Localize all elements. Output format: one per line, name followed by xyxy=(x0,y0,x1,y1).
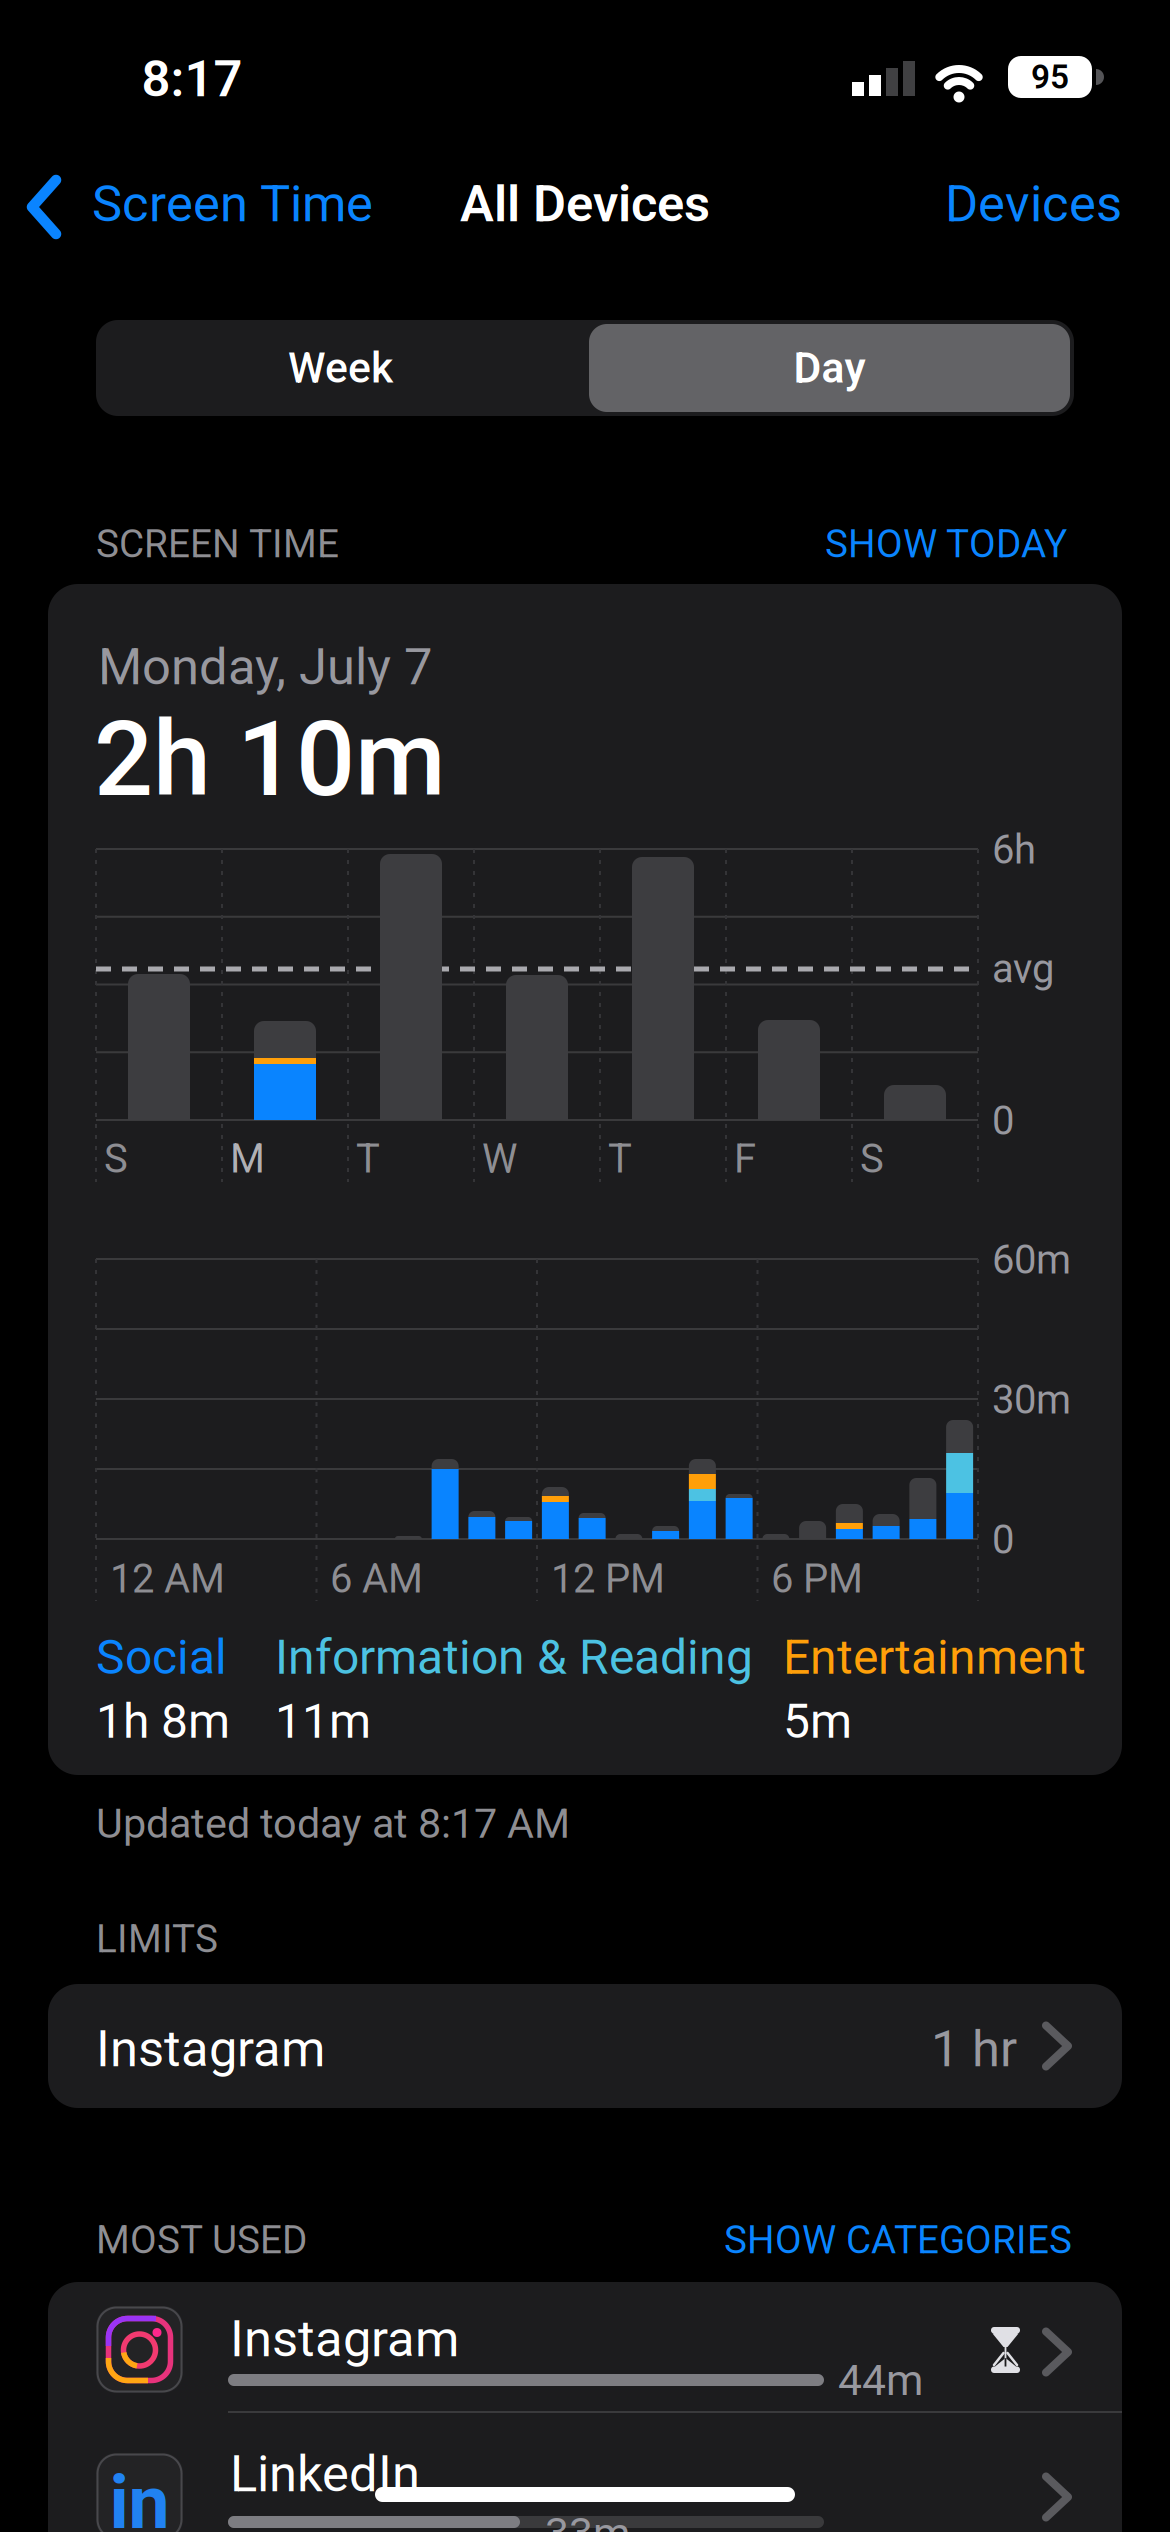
staticText: 2h 10m xyxy=(94,700,446,819)
staticText: 60m xyxy=(992,1237,1071,1283)
staticText: Instagram xyxy=(96,2020,325,2078)
button[interactable]: in xyxy=(48,2413,1122,2532)
staticText: 6h xyxy=(992,827,1036,873)
staticText: Monday, July 7 xyxy=(98,638,432,696)
staticText: SHOW TODAY xyxy=(825,522,1067,566)
button[interactable]: Week xyxy=(100,324,581,412)
staticText: 30m xyxy=(992,1377,1071,1423)
staticText: 1 hr xyxy=(931,2020,1017,2078)
button[interactable]: Back xyxy=(0,155,400,259)
button[interactable]: Instagram xyxy=(48,2282,1122,2412)
staticText: avg xyxy=(992,946,1054,992)
staticText: T xyxy=(608,1136,632,1182)
staticText: All Devices xyxy=(460,175,710,233)
staticText: MOST USED xyxy=(96,2218,307,2262)
staticText: S xyxy=(104,1136,128,1182)
staticText: S xyxy=(860,1136,884,1182)
button[interactable]: SHOW TODAY xyxy=(825,522,1067,566)
button[interactable]: Devices xyxy=(945,175,1122,233)
staticText: 12 AM xyxy=(110,1556,225,1602)
staticText: Updated today at 8:17 AM xyxy=(96,1800,570,1847)
button[interactable]: SHOW CATEGORIES xyxy=(724,2218,1072,2262)
staticText: 12 PM xyxy=(551,1556,665,1602)
staticText: LinkedIn xyxy=(230,2445,420,2503)
staticText: Entertainment xyxy=(783,1630,1086,1685)
staticText: Week xyxy=(288,344,393,392)
staticText: SHOW CATEGORIES xyxy=(724,2218,1072,2262)
staticText: 0 xyxy=(992,1098,1014,1144)
staticText: W xyxy=(482,1136,517,1182)
staticText: F xyxy=(734,1136,756,1182)
staticText: T xyxy=(356,1136,380,1182)
staticText: 44m xyxy=(838,2356,923,2405)
staticText: 8:17 xyxy=(141,50,242,108)
staticText: M xyxy=(230,1136,265,1182)
staticText: SCREEN TIME xyxy=(96,522,339,566)
staticText: 0 xyxy=(992,1517,1014,1563)
staticText: in xyxy=(109,2461,169,2532)
staticText: Screen Time xyxy=(92,175,373,233)
button[interactable]: Day xyxy=(589,324,1070,412)
staticText: 5m xyxy=(783,1694,852,1749)
staticText: 33m xyxy=(545,2509,630,2532)
staticText: 6 AM xyxy=(330,1556,423,1602)
staticText: Devices xyxy=(945,175,1122,233)
staticText: Day xyxy=(793,344,865,392)
staticText: 11m xyxy=(275,1694,371,1749)
staticText: 6 PM xyxy=(771,1556,863,1602)
staticText: LIMITS xyxy=(96,1917,218,1961)
staticText: Information & Reading xyxy=(275,1630,753,1685)
button[interactable]: Instagram xyxy=(48,1984,1122,2108)
staticText: Instagram xyxy=(230,2310,459,2368)
staticText: Social xyxy=(96,1630,227,1685)
staticText: 1h 8m xyxy=(96,1694,230,1749)
staticText: 95 xyxy=(1031,58,1069,96)
